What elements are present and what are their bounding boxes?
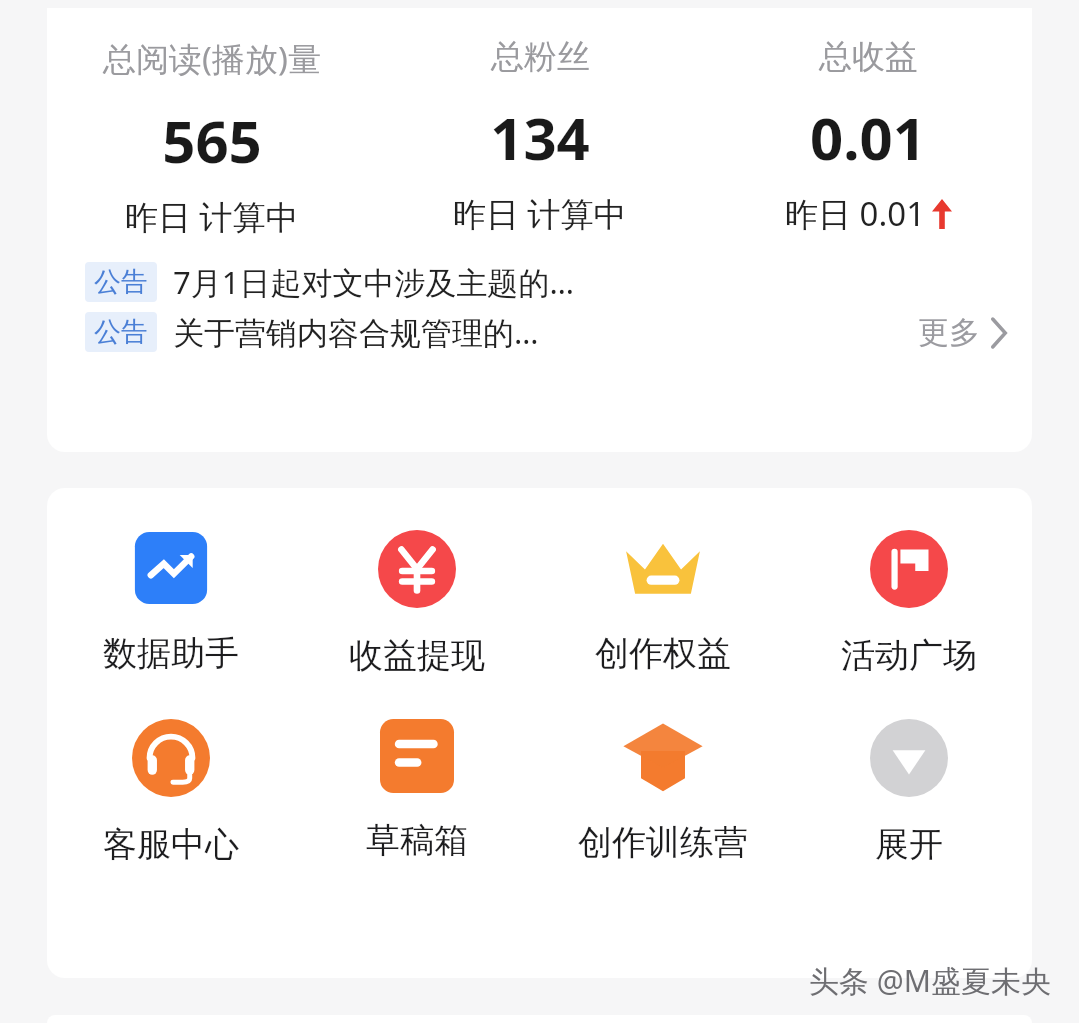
- staticText: 更多: [918, 313, 980, 352]
- button[interactable]: 展开: [786, 719, 1032, 866]
- button[interactable]: 创作训练营: [540, 719, 786, 864]
- other: 活动广场: [870, 530, 948, 608]
- staticText: 公告: [94, 315, 148, 349]
- staticText: 数据助手: [103, 632, 239, 675]
- other: 数据助手: [133, 530, 209, 606]
- button[interactable]: 草稿箱: [294, 719, 540, 862]
- staticText: 草稿箱: [366, 819, 468, 862]
- button[interactable]: 数据助手: [47, 530, 294, 675]
- staticText: 565: [162, 101, 262, 180]
- staticText: 关于营销内容合规管理的…: [173, 311, 539, 353]
- staticText: 展开: [875, 823, 943, 866]
- staticText: 总粉丝: [491, 36, 590, 78]
- button[interactable]: 收益提现: [294, 530, 540, 677]
- staticText: 昨日 计算中: [125, 194, 299, 239]
- staticText: 昨日 计算中: [453, 191, 627, 236]
- button[interactable]: 客服中心: [47, 719, 294, 866]
- staticText: 公告: [94, 265, 148, 299]
- button[interactable]: 总收益: [704, 36, 1032, 236]
- staticText: 活动广场: [841, 634, 977, 677]
- staticText: 134: [490, 98, 590, 177]
- other: 草稿箱: [380, 719, 454, 793]
- staticText: 总阅读(播放)量: [103, 36, 321, 81]
- staticText: 收益提现: [349, 634, 485, 677]
- staticText: 创作训练营: [578, 821, 748, 864]
- other: 创作训练营: [619, 719, 707, 795]
- staticText: 创作权益: [595, 632, 731, 675]
- button[interactable]: 公告: [47, 273, 1032, 363]
- other: 创作权益: [622, 530, 704, 606]
- button[interactable]: 总阅读(播放)量: [47, 36, 376, 239]
- button[interactable]: 总粉丝: [376, 36, 704, 236]
- staticText: 0.01: [810, 98, 926, 177]
- staticText: 昨日 0.01: [785, 191, 926, 236]
- staticText: 7月1日起对文中涉及主题的…: [173, 261, 574, 303]
- staticText: 头条 @M盛夏未央: [809, 960, 1051, 1001]
- other: 客服中心: [132, 719, 210, 797]
- other: 展开: [870, 719, 948, 797]
- button[interactable]: 创作权益: [540, 530, 786, 675]
- other: 收益提现: [378, 530, 456, 608]
- staticText: 总收益: [819, 36, 918, 78]
- staticText: 客服中心: [103, 823, 239, 866]
- button[interactable]: 活动广场: [786, 530, 1032, 677]
